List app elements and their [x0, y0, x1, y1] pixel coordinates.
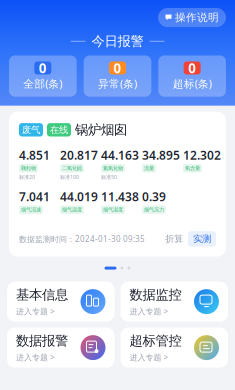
button[interactable]: 0 [84, 55, 151, 97]
staticText: 44.019 [60, 189, 98, 204]
staticText: 全部(条) [23, 76, 62, 91]
staticText: 标准20 [19, 173, 35, 181]
staticText: 二氧化硫 [62, 165, 82, 172]
staticText: 数据报警 [16, 333, 68, 349]
staticText: 进入专题 > [129, 306, 168, 317]
button[interactable]: 操作说明 [158, 8, 226, 27]
staticText: 7.041 [19, 189, 50, 204]
staticText: 0 [39, 59, 47, 77]
staticText: 烟气温度 [62, 206, 82, 213]
staticText: 氧含量 [185, 165, 200, 172]
staticText: 4.851 [19, 147, 50, 163]
staticText: 锅炉烟囱 [75, 122, 127, 138]
staticText: 超标管控 [129, 333, 181, 349]
staticText: 流量 [144, 165, 154, 172]
staticText: 0 [113, 59, 121, 77]
staticText: 基本信息 [16, 287, 68, 303]
button[interactable]: 超标管控 [120, 328, 228, 368]
staticText: 烟气流速 [21, 206, 41, 213]
button[interactable]: 0 [158, 55, 226, 97]
staticText: 进入专题 > [16, 306, 55, 317]
staticText: 操作说明 [175, 11, 219, 24]
staticText: 44.163 [101, 147, 139, 163]
staticText: 烟气压力 [144, 206, 164, 213]
staticText: 11.438 [101, 189, 139, 204]
staticText: 进入专题 > [16, 352, 55, 363]
staticText: 氮氧化物 [103, 165, 123, 172]
staticText: 34.895 [142, 147, 180, 163]
staticText: 烟气湿度 [103, 206, 123, 213]
staticText: 0 [188, 59, 196, 77]
button[interactable]: 实测 [188, 231, 216, 247]
staticText: 折算 [165, 233, 183, 245]
staticText: 数据监测时间：2024-01-30 09:35 [19, 234, 145, 244]
staticText: 20.817 [60, 147, 98, 163]
staticText: 超标(条) [173, 76, 212, 91]
staticText: 12.302 [183, 147, 221, 163]
staticText: 0.39 [142, 189, 166, 204]
staticText: 标准100 [60, 173, 79, 181]
button[interactable]: 数据报警 [7, 328, 114, 368]
staticText: 标准50 [101, 173, 117, 181]
staticText: 数据监控 [129, 287, 181, 303]
button[interactable]: 0 [9, 55, 77, 97]
button[interactable]: 数据监控 [120, 282, 228, 322]
staticText: 在线 [50, 124, 68, 136]
staticText: 实测 [193, 233, 211, 245]
button[interactable]: 折算 [160, 231, 188, 247]
staticText: 异常(条) [98, 76, 137, 91]
staticText: 进入专题 > [129, 352, 168, 363]
button[interactable]: 基本信息 [7, 282, 114, 322]
staticText: 今日报警 [91, 33, 143, 49]
staticText: 颗粒物 [21, 165, 36, 172]
staticText: 废气 [22, 124, 40, 136]
